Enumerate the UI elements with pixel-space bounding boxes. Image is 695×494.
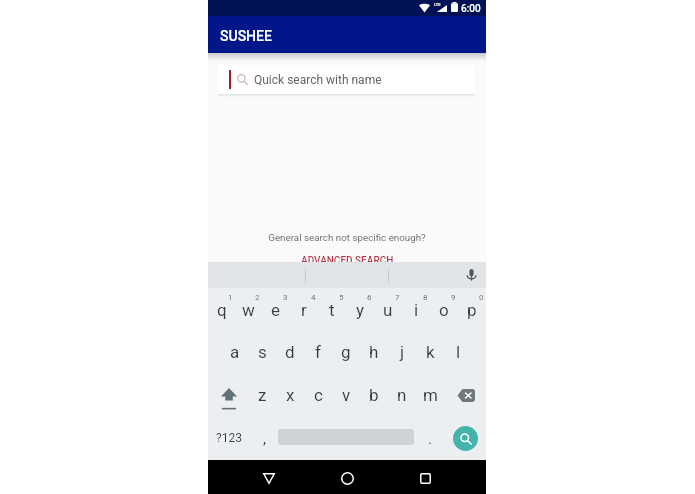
staticText: SUSHEE: [220, 28, 272, 44]
button[interactable]: Shift: [208, 374, 249, 417]
staticText: 6:00: [461, 3, 481, 15]
staticText: 4: [311, 293, 316, 302]
button[interactable]: z: [249, 374, 276, 417]
button[interactable]: Backspace: [444, 374, 486, 417]
button[interactable]: u: [374, 288, 402, 331]
staticText: e: [271, 300, 281, 320]
staticText: a: [230, 342, 240, 362]
staticText: g: [341, 342, 351, 362]
button[interactable]: Search: [453, 426, 478, 451]
staticText: 6: [367, 293, 372, 302]
staticText: u: [383, 300, 393, 320]
staticText: 7: [395, 293, 400, 302]
button[interactable]: h: [360, 331, 388, 374]
button[interactable]: Home: [327, 460, 367, 494]
button[interactable]: a: [221, 331, 248, 374]
staticText: n: [397, 385, 407, 405]
button[interactable]: f: [304, 331, 332, 374]
staticText: General search not specific enough?: [268, 232, 426, 243]
staticText: m: [423, 385, 438, 405]
button[interactable]: ,: [250, 417, 278, 460]
button[interactable]: ?123: [208, 417, 250, 460]
button[interactable]: r: [290, 288, 318, 331]
staticText: ADVANCED SEARCH: [301, 255, 394, 267]
staticText: k: [426, 342, 435, 362]
button[interactable]: y: [346, 288, 374, 331]
staticText: b: [369, 385, 379, 405]
staticText: c: [314, 385, 323, 405]
button[interactable]: l: [444, 331, 472, 374]
staticText: 3: [283, 293, 288, 302]
staticText: ?123: [216, 431, 242, 445]
button[interactable]: .: [416, 417, 444, 460]
staticText: d: [285, 342, 295, 362]
button[interactable]: g: [332, 331, 360, 374]
button[interactable]: SUSHEE: [208, 16, 486, 53]
staticText: 0: [479, 293, 484, 302]
staticText: Quick search with name: [254, 73, 382, 87]
staticText: .: [428, 430, 432, 448]
staticText: w: [242, 300, 255, 320]
staticText: 2: [255, 293, 260, 302]
button[interactable]: b: [360, 374, 388, 417]
staticText: LTE: [434, 2, 441, 7]
staticText: p: [467, 300, 477, 320]
button[interactable]: m: [416, 374, 444, 417]
staticText: j: [400, 342, 405, 362]
button[interactable]: c: [304, 374, 332, 417]
staticText: q: [217, 300, 227, 320]
button[interactable]: i: [402, 288, 430, 331]
staticText: v: [342, 385, 351, 405]
button[interactable]: Recents: [405, 460, 445, 494]
staticText: r: [301, 300, 307, 320]
staticText: y: [356, 300, 365, 320]
staticText: 8: [423, 293, 428, 302]
button[interactable]: t: [318, 288, 346, 331]
button[interactable]: w: [235, 288, 262, 331]
button[interactable]: Voice input: [459, 263, 483, 287]
staticText: f: [315, 342, 321, 362]
staticText: h: [369, 342, 379, 362]
button[interactable]: Back: [249, 460, 289, 494]
staticText: 1: [228, 293, 233, 302]
staticText: o: [439, 300, 449, 320]
staticText: ,: [263, 430, 266, 448]
button[interactable]: e: [262, 288, 290, 331]
staticText: i: [414, 300, 419, 320]
staticText: x: [286, 385, 295, 405]
staticText: s: [258, 342, 267, 362]
button[interactable]: n: [388, 374, 416, 417]
staticText: l: [456, 342, 461, 362]
button[interactable]: ADVANCED SEARCH: [301, 255, 394, 267]
button[interactable]: k: [416, 331, 444, 374]
staticText: t: [329, 300, 335, 320]
button[interactable]: s: [248, 331, 276, 374]
button[interactable]: Quick search with name: [218, 65, 475, 94]
staticText: 9: [451, 293, 456, 302]
staticText: 5: [339, 293, 344, 302]
staticText: z: [258, 385, 267, 405]
button[interactable]: o: [430, 288, 458, 331]
button[interactable]: d: [276, 331, 304, 374]
button[interactable]: j: [388, 331, 416, 374]
button[interactable]: x: [276, 374, 304, 417]
button[interactable]: v: [332, 374, 360, 417]
button[interactable]: p: [458, 288, 486, 331]
button[interactable]: q: [208, 288, 235, 331]
